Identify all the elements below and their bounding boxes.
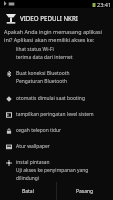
staticText: terima data dari internet	[16, 54, 73, 61]
button[interactable]: Pasang	[57, 182, 113, 200]
staticText: Pengaturan Bluetooth	[16, 78, 67, 85]
staticText: cegah telepon tidur	[16, 127, 62, 134]
staticText: Batal	[22, 188, 34, 195]
staticText: instal pintasan	[16, 159, 50, 166]
staticText: Buat koneksi Bluetooth	[16, 70, 70, 77]
staticText: 23:41	[97, 1, 112, 8]
staticText: lihat status Wi-Fi	[16, 46, 54, 53]
staticText: Uji akses ke penyimpanan yang	[16, 167, 89, 174]
staticText: otomatis dimulai saat booting	[16, 95, 85, 102]
staticText: dilindungi	[16, 175, 40, 182]
staticText: Pasang	[76, 188, 94, 195]
staticText: ini? Aplikasi akan memiliki akses ke:	[4, 36, 95, 43]
staticText: VIDEO PEDULI NKRI	[20, 14, 78, 22]
button[interactable]: Batal	[0, 182, 56, 200]
staticText: tampilkan peringatan level sistem	[16, 111, 94, 118]
staticText: Apakah Anda ingin memasang aplikasi	[4, 28, 102, 35]
staticText: Atur wallpaper	[16, 143, 50, 150]
